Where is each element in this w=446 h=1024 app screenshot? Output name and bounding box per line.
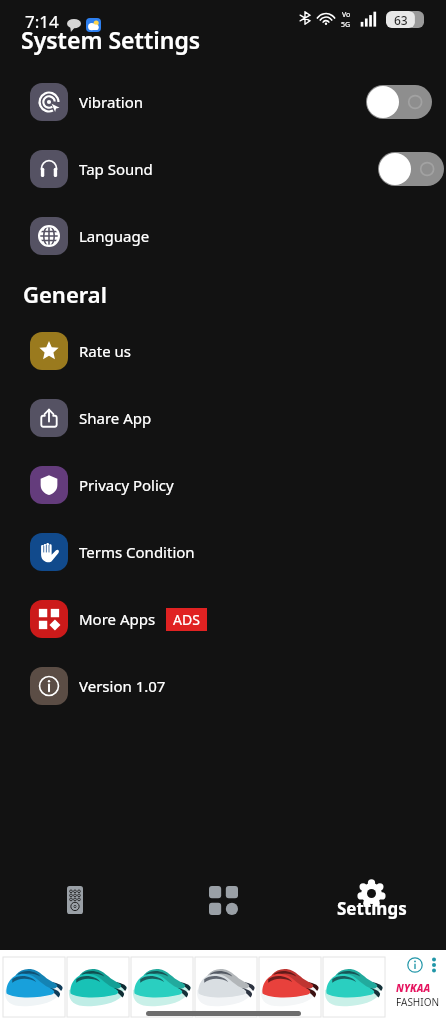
button[interactable]: More Apps bbox=[0, 586, 446, 653]
button[interactable]: Toggle bbox=[366, 85, 432, 119]
staticText: Rate us bbox=[79, 341, 131, 361]
staticText: NYKAA bbox=[396, 981, 431, 995]
button[interactable]: Toggle bbox=[378, 152, 444, 186]
button[interactable]: Rate us bbox=[0, 318, 446, 385]
button[interactable]: Settings bbox=[322, 855, 421, 950]
staticText: Tap Sound bbox=[79, 159, 153, 179]
button[interactable]: Vibration bbox=[0, 69, 446, 136]
button[interactable]: Remote bbox=[25, 855, 124, 950]
button[interactable]: Language bbox=[0, 203, 446, 270]
staticText: General bbox=[23, 279, 107, 309]
staticText: Terms Condition bbox=[79, 542, 195, 562]
staticText: Version 1.07 bbox=[79, 676, 166, 696]
button[interactable] bbox=[3, 957, 65, 1017]
button[interactable]: More options bbox=[429, 957, 439, 973]
staticText: System Settings bbox=[21, 24, 201, 55]
staticText: Settings bbox=[337, 897, 407, 920]
button[interactable]: Share App bbox=[0, 385, 446, 452]
button[interactable]: Terms Condition bbox=[0, 519, 446, 586]
staticText: Share App bbox=[79, 408, 152, 428]
button[interactable]: Apps bbox=[174, 855, 273, 950]
button[interactable] bbox=[323, 957, 385, 1017]
staticText: Language bbox=[79, 226, 150, 246]
staticText: 7:14 bbox=[25, 10, 59, 33]
button[interactable]: Ad info bbox=[407, 957, 423, 973]
button[interactable] bbox=[195, 957, 257, 1017]
staticText: 63 bbox=[394, 12, 408, 27]
staticText: Privacy Policy bbox=[79, 475, 174, 495]
staticText: ADS bbox=[173, 610, 200, 629]
staticText: 5G bbox=[341, 20, 351, 30]
staticText: Vo bbox=[342, 10, 351, 20]
button[interactable] bbox=[67, 957, 129, 1017]
button[interactable]: Version 1.07 bbox=[0, 653, 446, 720]
staticText: Vibration bbox=[79, 92, 144, 112]
button[interactable] bbox=[131, 957, 193, 1017]
button[interactable]: Privacy Policy bbox=[0, 452, 446, 519]
staticText: More Apps bbox=[79, 609, 156, 629]
button[interactable] bbox=[259, 957, 321, 1017]
staticText: FASHION bbox=[396, 995, 440, 1009]
button[interactable]: Tap Sound bbox=[0, 136, 446, 203]
